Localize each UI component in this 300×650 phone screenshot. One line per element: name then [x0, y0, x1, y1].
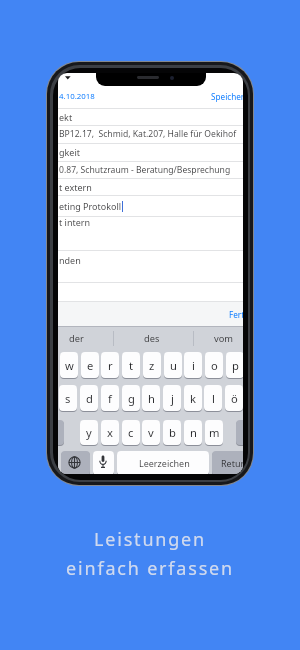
- staticText: t intern: [59, 216, 91, 228]
- staticText: gkeit: [59, 146, 80, 158]
- staticText: p: [232, 358, 239, 373]
- button[interactable]: i: [184, 352, 202, 378]
- staticText: vom: [214, 332, 234, 345]
- staticText: c: [128, 425, 134, 440]
- staticText: Speichern: [211, 91, 243, 102]
- staticText: h: [148, 391, 155, 406]
- staticText: m: [209, 425, 220, 440]
- button[interactable]: Speichern: [211, 89, 243, 103]
- button[interactable]: g: [122, 385, 140, 411]
- staticText: ö: [231, 391, 238, 406]
- staticText: s: [65, 391, 71, 406]
- button[interactable]: c: [122, 420, 140, 445]
- staticText: einfach erfassen: [66, 556, 234, 581]
- staticText: x: [107, 425, 113, 440]
- button[interactable]: 0.87, Schutzraum - Beratung/Besprechung: [58, 161, 243, 178]
- button[interactable]: k: [184, 385, 202, 411]
- staticText: n: [190, 425, 197, 440]
- button[interactable]: e: [81, 352, 99, 378]
- button[interactable]: n: [184, 420, 202, 445]
- staticText: t extern: [59, 181, 92, 193]
- button[interactable]: Fertig: [229, 301, 243, 327]
- button[interactable]: [212, 451, 243, 474]
- button[interactable]: [236, 420, 243, 445]
- button[interactable]: [58, 420, 64, 445]
- staticText: l: [212, 391, 215, 406]
- staticText: der: [69, 332, 84, 345]
- button[interactable]: vom: [209, 326, 239, 351]
- staticText: eting Protokoll: [59, 200, 122, 212]
- staticText: b: [169, 425, 176, 440]
- staticText: 0.87, Schutzraum - Beratung/Besprechung: [59, 164, 231, 176]
- button[interactable]: u: [164, 352, 182, 378]
- staticText: r: [108, 358, 113, 373]
- staticText: t: [129, 358, 134, 373]
- button[interactable]: j: [163, 385, 181, 411]
- button[interactable]: y: [80, 420, 98, 445]
- button[interactable]: t extern: [58, 178, 243, 196]
- button[interactable]: der: [61, 326, 91, 351]
- button[interactable]: r: [101, 352, 119, 378]
- button[interactable]: ekt: [58, 108, 243, 126]
- button[interactable]: z: [143, 352, 161, 378]
- button[interactable]: des: [137, 326, 167, 351]
- staticText: Leistungen: [94, 527, 206, 552]
- staticText: v: [148, 425, 154, 440]
- staticText: nden: [59, 254, 81, 266]
- button[interactable]: f: [101, 385, 119, 411]
- staticText: z: [149, 358, 155, 373]
- button[interactable]: b: [163, 420, 181, 445]
- button[interactable]: 4.10.2018: [59, 89, 101, 103]
- button[interactable]: o: [205, 352, 223, 378]
- staticText: d: [86, 391, 93, 406]
- button[interactable]: nden: [58, 250, 243, 270]
- button[interactable]: [117, 451, 209, 474]
- staticText: y: [86, 425, 92, 440]
- button[interactable]: s: [59, 385, 77, 411]
- staticText: Return: [221, 457, 243, 469]
- button[interactable]: p: [226, 352, 243, 378]
- button[interactable]: l: [204, 385, 222, 411]
- button[interactable]: t: [122, 352, 140, 378]
- staticText: u: [170, 358, 177, 373]
- button[interactable]: [61, 451, 90, 474]
- staticText: Fertig: [229, 309, 243, 320]
- button[interactable]: m: [205, 420, 223, 445]
- staticText: Leerzeichen: [139, 457, 190, 469]
- button[interactable]: h: [142, 385, 160, 411]
- button[interactable]: w: [60, 352, 78, 378]
- staticText: 4.10.2018: [59, 91, 95, 102]
- staticText: f: [108, 391, 112, 406]
- staticText: w: [65, 358, 74, 373]
- staticText: e: [87, 358, 94, 373]
- button[interactable]: t intern: [58, 216, 243, 228]
- button[interactable]: v: [142, 420, 160, 445]
- staticText: des: [144, 332, 160, 345]
- button[interactable]: gkeit: [58, 143, 243, 161]
- staticText: k: [190, 391, 196, 406]
- staticText: j: [171, 391, 174, 406]
- staticText: i: [192, 358, 195, 373]
- button[interactable]: BP12.17, Schmid, Kat.207, Halle für Oeki…: [58, 125, 243, 143]
- staticText: g: [128, 391, 135, 406]
- button[interactable]: [93, 451, 114, 474]
- button[interactable]: x: [101, 420, 119, 445]
- staticText: ekt: [59, 111, 73, 123]
- button[interactable]: d: [80, 385, 98, 411]
- button[interactable]: eting Protokoll: [58, 195, 243, 216]
- staticText: o: [211, 358, 218, 373]
- staticText: BP12.17, Schmid, Kat.207, Halle für Oeki…: [59, 128, 237, 140]
- button[interactable]: ö: [225, 385, 243, 411]
